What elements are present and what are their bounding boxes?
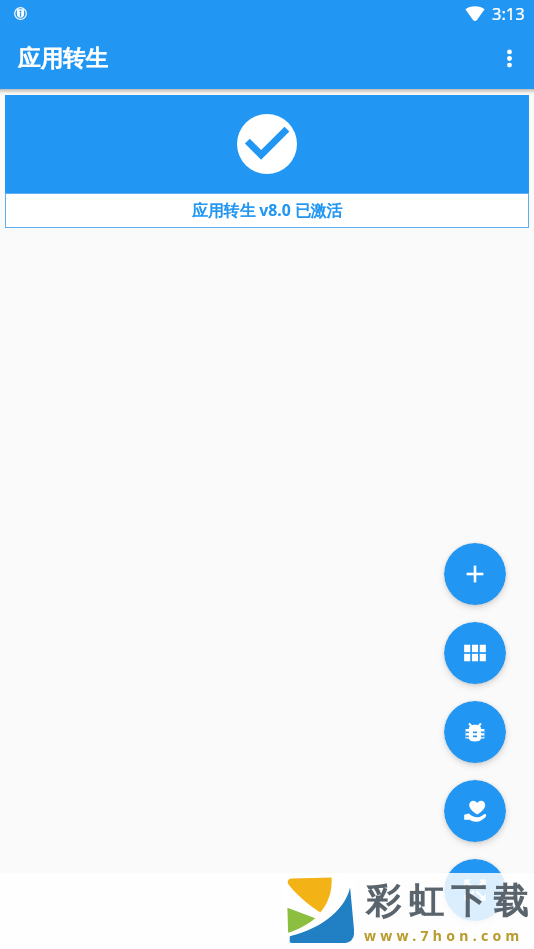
button[interactable]: Expand bbox=[444, 859, 506, 921]
staticText: 3:13 bbox=[492, 2, 525, 24]
staticText: 应用转生 bbox=[18, 44, 108, 72]
button[interactable]: 应用转生 v8.0 已激活 bbox=[5, 95, 529, 228]
button[interactable]: More options bbox=[486, 39, 533, 83]
staticText: 应用转生 v8.0 已激活 bbox=[192, 199, 343, 221]
staticText: 彩虹下载 bbox=[362, 879, 532, 923]
button[interactable]: Donate bbox=[444, 780, 506, 842]
button[interactable]: Add bbox=[444, 543, 506, 605]
button[interactable]: All apps bbox=[444, 622, 506, 684]
staticText: www.7hon.com bbox=[364, 926, 524, 945]
button[interactable]: Bug report bbox=[444, 701, 506, 763]
